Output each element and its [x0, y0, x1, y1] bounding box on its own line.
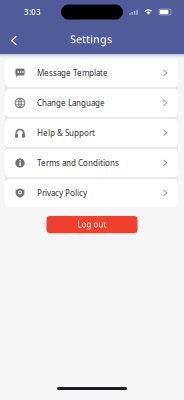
staticText: Log out [77, 219, 106, 230]
staticText: Help & Support [37, 128, 95, 138]
staticText: Privacy Policy [37, 188, 87, 198]
button[interactable]: Terms and Conditions [5, 149, 178, 177]
button[interactable]: Change Language [5, 89, 178, 117]
button[interactable]: Back [1, 26, 27, 52]
staticText: Terms and Conditions [37, 158, 119, 168]
button[interactable]: Log out [46, 216, 137, 233]
staticText: Change Language [37, 98, 105, 108]
staticText: Message Template [37, 68, 108, 78]
staticText: Settings [70, 32, 112, 46]
button[interactable]: Privacy Policy [5, 179, 178, 207]
staticText: 3:03 [24, 7, 41, 17]
button[interactable]: Help & Support [5, 119, 178, 147]
button[interactable]: Message Template [5, 59, 178, 87]
